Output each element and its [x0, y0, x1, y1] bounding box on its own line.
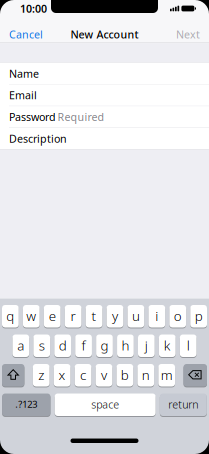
button[interactable]: r — [65, 304, 81, 328]
button[interactable]: k — [159, 334, 176, 357]
button[interactable]: m — [158, 363, 175, 387]
button[interactable]: j — [138, 334, 155, 357]
staticText: g — [100, 336, 108, 354]
button[interactable]: Email — [0, 85, 209, 106]
staticText: w — [26, 307, 36, 325]
staticText: v — [101, 366, 107, 384]
button[interactable]: t — [86, 304, 102, 328]
staticText: q — [6, 307, 14, 325]
button[interactable]: Description — [0, 128, 209, 149]
staticText: Required — [57, 110, 104, 124]
staticText: Next — [176, 27, 200, 41]
button[interactable]: d — [54, 334, 71, 357]
button[interactable]: x — [54, 363, 70, 387]
button[interactable]: w — [23, 304, 40, 328]
staticText: l — [187, 336, 190, 354]
staticText: t — [91, 307, 96, 325]
button[interactable]: z — [33, 363, 49, 387]
button[interactable]: y — [107, 304, 123, 328]
button[interactable]: Delete — [183, 363, 207, 387]
button[interactable]: s — [33, 334, 50, 357]
staticText: New Account — [70, 27, 138, 41]
staticText: m — [161, 366, 173, 384]
staticText: z — [38, 366, 44, 384]
button[interactable]: space — [55, 393, 156, 416]
staticText: Email — [9, 88, 37, 102]
staticText: y — [112, 307, 118, 325]
staticText: p — [195, 307, 203, 325]
staticText: u — [132, 307, 140, 325]
button[interactable]: a — [12, 334, 29, 357]
button[interactable]: return — [160, 393, 207, 416]
staticText: return — [168, 397, 198, 411]
button[interactable]: h — [117, 334, 134, 357]
staticText: b — [121, 366, 129, 384]
staticText: h — [121, 336, 129, 354]
staticText: e — [49, 307, 56, 325]
staticText: Name — [9, 66, 39, 81]
button[interactable]: Name — [0, 63, 209, 84]
staticText: s — [39, 336, 45, 354]
button[interactable]: o — [169, 304, 186, 328]
staticText: d — [59, 336, 67, 354]
button[interactable]: g — [96, 334, 113, 357]
staticText: 10:00 — [20, 1, 47, 16]
staticText: o — [174, 307, 182, 325]
staticText: n — [142, 366, 150, 384]
staticText: Description — [9, 131, 67, 146]
button[interactable]: Shift — [2, 363, 24, 387]
staticText: .?123 — [15, 398, 37, 410]
staticText: k — [164, 336, 171, 354]
button[interactable]: Cancel — [9, 27, 43, 41]
staticText: a — [17, 336, 24, 354]
button[interactable]: b — [116, 363, 133, 387]
button[interactable]: c — [75, 363, 91, 387]
button[interactable]: e — [44, 304, 60, 328]
button[interactable]: Password — [0, 106, 209, 127]
staticText: j — [145, 336, 148, 354]
button[interactable]: Numbers — [2, 393, 50, 416]
staticText: x — [59, 366, 66, 384]
button[interactable]: p — [190, 304, 207, 328]
staticText: f — [82, 336, 86, 354]
button[interactable]: l — [180, 334, 196, 357]
button[interactable]: u — [127, 304, 144, 328]
staticText: c — [80, 366, 86, 384]
button[interactable]: q — [2, 304, 19, 328]
staticText: space — [91, 397, 119, 411]
staticText: Cancel — [9, 27, 43, 41]
staticText: i — [155, 307, 158, 325]
button[interactable]: i — [148, 304, 165, 328]
button[interactable]: f — [75, 334, 92, 357]
button[interactable]: Next — [176, 27, 200, 41]
staticText: Password — [9, 110, 56, 124]
button[interactable]: n — [137, 363, 154, 387]
staticText: r — [71, 307, 76, 325]
button[interactable]: v — [96, 363, 112, 387]
